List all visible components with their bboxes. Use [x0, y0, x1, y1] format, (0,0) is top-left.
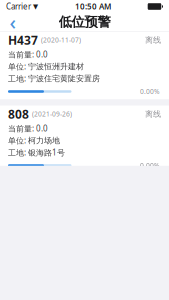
- staticText: 单位:: [8, 135, 28, 146]
- staticText: 0.00%: [140, 161, 160, 170]
- staticText: 离线: [145, 109, 161, 119]
- staticText: 0.0: [36, 123, 48, 134]
- staticText: (2021-09-26): [32, 110, 72, 118]
- button[interactable]: Back: [0, 13, 26, 31]
- button[interactable]: 808: [0, 105, 169, 173]
- staticText: 低位预警: [58, 14, 110, 30]
- button[interactable]: H437: [0, 31, 169, 99]
- staticText: 工地:: [8, 73, 28, 84]
- staticText: 0.0: [36, 49, 48, 60]
- staticText: ‹: [9, 9, 16, 35]
- staticText: 宁波恒洲升建材: [28, 62, 84, 71]
- staticText: 0.00%: [140, 87, 160, 96]
- staticText: 柯力场地: [28, 136, 60, 145]
- staticText: ▼: [33, 3, 38, 10]
- staticText: 银海路1号: [28, 147, 65, 158]
- staticText: 当前量:: [8, 123, 36, 134]
- staticText: Carrier: [6, 1, 31, 12]
- staticText: 单位:: [8, 61, 28, 72]
- staticText: 808: [8, 106, 29, 122]
- staticText: 宁波住宅黄陡安置房: [28, 74, 100, 83]
- staticText: 当前量:: [8, 49, 36, 60]
- staticText: 工地:: [8, 147, 28, 158]
- staticText: (2020-11-07): [41, 36, 81, 44]
- staticText: 10:50 AM: [75, 1, 111, 12]
- staticText: H437: [8, 32, 38, 48]
- staticText: 离线: [145, 35, 161, 45]
